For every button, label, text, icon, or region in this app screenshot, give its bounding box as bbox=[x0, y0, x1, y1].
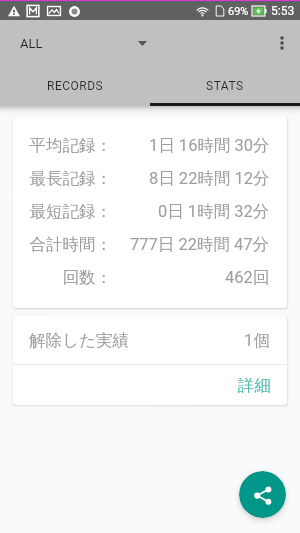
staticText: 最長記録： bbox=[29, 168, 112, 189]
button[interactable]: 解除した実績 bbox=[13, 316, 287, 364]
button[interactable]: 詳細 bbox=[222, 367, 287, 404]
staticText: 8日 22時間 12分 bbox=[149, 168, 270, 189]
staticText: 0日 1時間 32分 bbox=[158, 201, 270, 222]
staticText: 回数： bbox=[29, 267, 112, 288]
staticText: 平均記録： bbox=[29, 135, 112, 156]
staticText: 解除した実績 bbox=[29, 330, 129, 351]
staticText: 最短記録： bbox=[29, 201, 112, 222]
staticText: 1日 16時間 30分 bbox=[149, 135, 270, 156]
button[interactable]: RECORDS bbox=[0, 66, 150, 106]
button[interactable]: More options bbox=[264, 25, 300, 61]
staticText: 462回 bbox=[225, 267, 270, 288]
staticText: 詳細 bbox=[238, 375, 271, 396]
staticText: STATS bbox=[206, 79, 244, 93]
staticText: 合計時間： bbox=[29, 234, 112, 255]
staticText: 5:53 bbox=[271, 4, 295, 18]
button[interactable]: Share bbox=[239, 471, 286, 518]
staticText: RECORDS bbox=[47, 79, 104, 93]
button[interactable]: STATS bbox=[150, 66, 300, 106]
staticText: 777日 22時間 47分 bbox=[130, 234, 270, 255]
staticText: ALL bbox=[20, 36, 43, 51]
staticText: 1個 bbox=[244, 330, 270, 351]
button[interactable]: ALL bbox=[0, 36, 157, 51]
staticText: 69% bbox=[228, 5, 249, 18]
